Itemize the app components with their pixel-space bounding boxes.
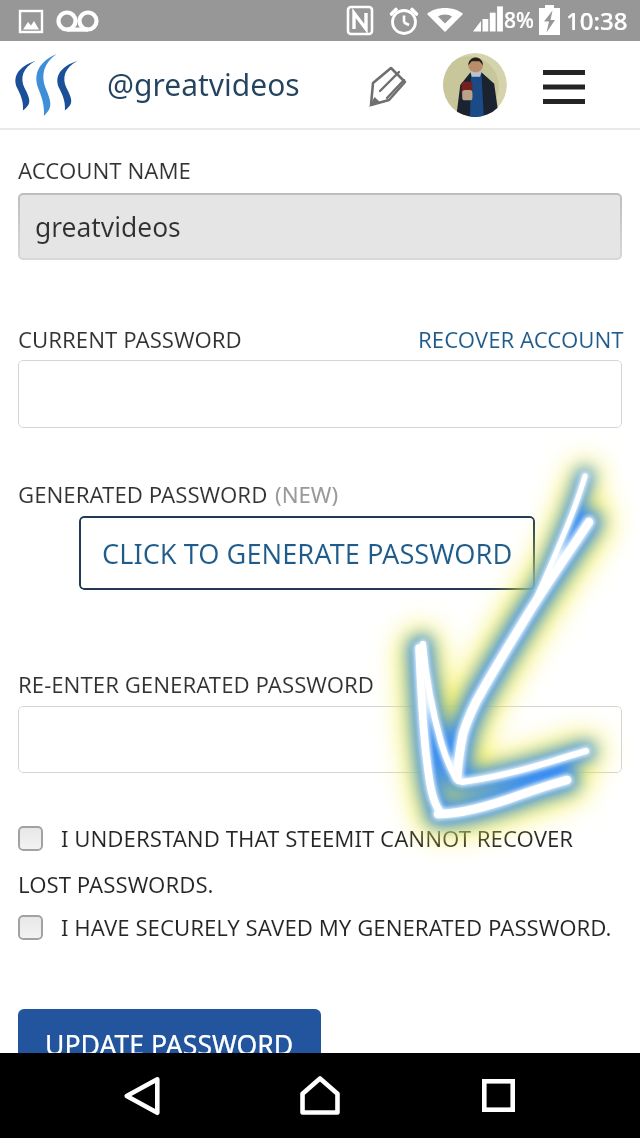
button[interactable]: Write post (359, 61, 413, 115)
staticText: LOST PASSWORDS. (18, 869, 214, 899)
staticText: GENERATED PASSWORD (18, 479, 268, 509)
staticText: I UNDERSTAND THAT STEEMIT CANNOT RECOVER (61, 823, 574, 853)
staticText: UPDATE PASSWORD (45, 1027, 294, 1063)
staticText: I HAVE SECURELY SAVED MY GENERATED PASSW… (61, 912, 612, 942)
button[interactable]: Recents (446, 1053, 550, 1138)
staticText: greatvideos (35, 209, 181, 245)
button[interactable]: UPDATE PASSWORD (18, 1009, 321, 1081)
staticText: 10:38 (566, 4, 628, 37)
button[interactable]: Back (90, 1053, 194, 1138)
button[interactable]: I UNDERSTAND THAT STEEMIT CANNOT RECOVER (18, 823, 574, 853)
button[interactable]: Menu (543, 70, 585, 104)
staticText: RECOVER ACCOUNT (418, 324, 624, 354)
staticText: ACCOUNT NAME (18, 155, 191, 185)
button[interactable]: Steemit home (13, 53, 77, 117)
button[interactable]: RECOVER ACCOUNT (418, 324, 624, 354)
button[interactable] (18, 360, 622, 428)
button[interactable] (18, 706, 622, 773)
staticText: RE-ENTER GENERATED PASSWORD (18, 669, 375, 699)
staticText: 8% (504, 6, 534, 35)
button[interactable]: I HAVE SECURELY SAVED MY GENERATED PASSW… (18, 912, 612, 942)
staticText: CURRENT PASSWORD (18, 324, 242, 354)
button[interactable]: Profile (443, 53, 507, 117)
button[interactable]: CLICK TO GENERATE PASSWORD (79, 516, 535, 590)
staticText: CLICK TO GENERATE PASSWORD (102, 535, 513, 572)
button[interactable]: Home (268, 1053, 372, 1138)
staticText: @greatvideos (107, 64, 300, 105)
button[interactable]: greatvideos (18, 193, 622, 260)
staticText: (NEW) (275, 479, 339, 509)
